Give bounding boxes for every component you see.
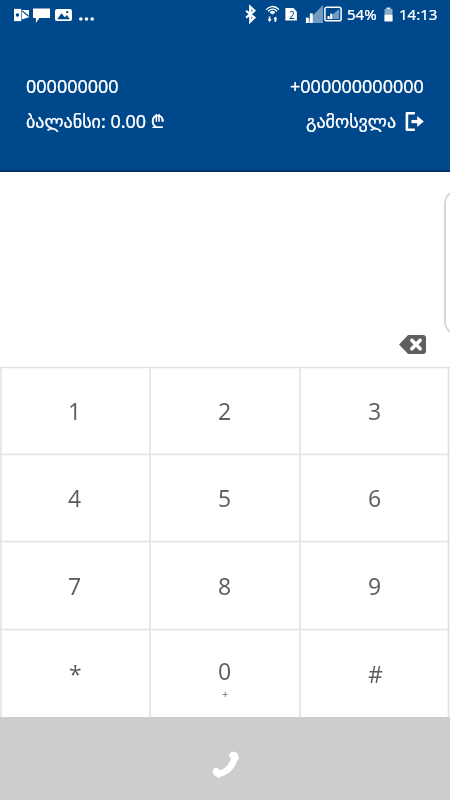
button[interactable]: 1 (0, 367, 150, 454)
staticText: 2 (289, 8, 295, 22)
staticText: 8 (218, 570, 232, 601)
staticText: 14:13 (399, 4, 438, 24)
button[interactable]: 4 (0, 454, 150, 541)
staticText: +000000000000 (290, 74, 424, 99)
staticText: ბალანსი: 0.00 ₾ (26, 109, 165, 134)
button[interactable]: Call (0, 717, 450, 800)
button[interactable]: 8 (150, 541, 300, 629)
button[interactable]: 2 (150, 367, 300, 454)
staticText: 2 (218, 395, 232, 426)
staticText: 6 (368, 482, 382, 513)
staticText: 9 (368, 570, 382, 601)
staticText: 5 (218, 482, 232, 513)
staticText: 000000000 (26, 74, 119, 99)
button[interactable]: 3 (300, 367, 450, 454)
staticText: 7 (68, 570, 82, 601)
staticText: გამოსვლა (306, 111, 397, 132)
staticText: 3 (368, 395, 382, 426)
staticText: * (69, 658, 82, 689)
button[interactable]: Contacts (444, 190, 450, 335)
staticText: 1 (68, 395, 82, 426)
staticText: 54% (347, 4, 377, 24)
staticText: # (368, 658, 383, 689)
staticText: 0 (218, 655, 232, 686)
button[interactable]: 0 (150, 629, 300, 717)
button[interactable]: 6 (300, 454, 450, 541)
button[interactable]: 5 (150, 454, 300, 541)
button[interactable]: 7 (0, 541, 150, 629)
staticText: 4 (68, 482, 82, 513)
button[interactable]: Backspace (399, 335, 426, 354)
button[interactable]: 9 (300, 541, 450, 629)
staticText: + (222, 686, 229, 701)
button[interactable]: # (300, 629, 450, 717)
button[interactable]: გამოსვლა (306, 111, 424, 132)
button[interactable]: * (0, 629, 150, 717)
